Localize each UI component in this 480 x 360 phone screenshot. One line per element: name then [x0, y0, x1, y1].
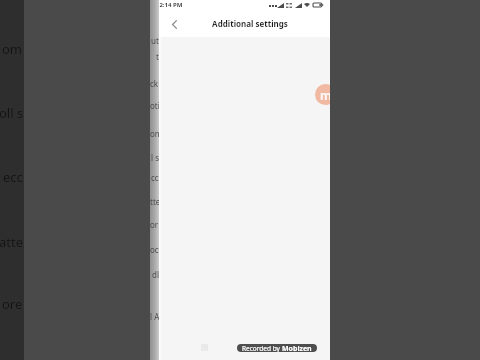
staticText: l A [150, 311, 159, 322]
staticText: 12:14 PM [159, 1, 183, 9]
staticText: or [150, 219, 159, 230]
staticText: Recorded by [242, 344, 282, 352]
staticText: om [2, 40, 23, 58]
staticText: tte [150, 196, 159, 207]
staticText: ecc [3, 168, 23, 186]
button[interactable]: Back [166, 12, 182, 37]
staticText: ck [150, 78, 159, 89]
staticText: ut [151, 35, 159, 46]
staticText: ore [2, 295, 23, 313]
staticText: Additional settings [212, 18, 288, 29]
staticText: om [150, 128, 159, 139]
staticText: atte [0, 233, 23, 251]
staticText: oc [150, 244, 159, 255]
staticText: Mobizen [282, 344, 312, 352]
staticText: oll s [0, 104, 23, 122]
staticText: t [156, 51, 159, 62]
staticText: dl [152, 269, 159, 280]
button[interactable]: Mobizen recorder [315, 84, 330, 105]
staticText: otif [150, 100, 159, 111]
staticText: cc [151, 172, 159, 183]
staticText: l s [151, 152, 159, 163]
staticText: m [320, 87, 330, 103]
